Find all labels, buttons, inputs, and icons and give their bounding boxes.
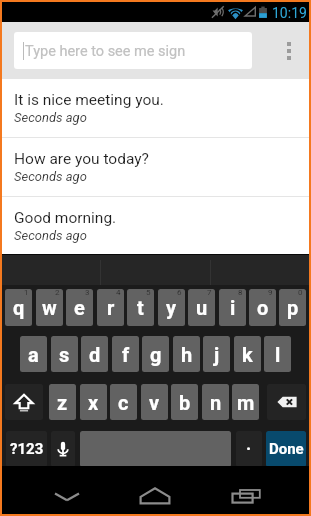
button[interactable]: r	[97, 289, 124, 326]
staticText: n	[210, 391, 222, 414]
button[interactable]: Voice input	[51, 431, 75, 467]
button[interactable]: Home	[113, 466, 197, 514]
button[interactable]: Hide keyboard	[25, 466, 109, 514]
button[interactable]: y	[158, 289, 185, 326]
staticText: e	[74, 296, 85, 319]
button[interactable]: x	[80, 384, 107, 420]
button[interactable]: Shift	[5, 384, 43, 420]
staticText: Good morning.	[14, 209, 117, 227]
staticText: 6	[177, 289, 182, 297]
staticText: z	[57, 391, 68, 414]
staticText: 5	[146, 289, 151, 297]
staticText: w	[42, 296, 57, 319]
staticText: 7	[207, 289, 212, 297]
staticText: Seconds ago	[14, 110, 87, 125]
staticText: i	[230, 296, 236, 319]
button[interactable]: Recent apps	[204, 466, 288, 514]
staticText: Seconds ago	[14, 169, 87, 184]
button[interactable]	[80, 431, 231, 467]
button[interactable]: o	[249, 289, 276, 326]
staticText: p	[287, 296, 299, 319]
button[interactable]: Good morning.	[2, 197, 309, 254]
staticText: Done	[269, 440, 304, 458]
staticText: 1	[24, 289, 29, 297]
staticText: l	[275, 343, 281, 366]
button[interactable]: n	[202, 384, 229, 420]
staticText: m	[237, 391, 255, 414]
staticText: ?123	[10, 440, 44, 458]
staticText: Type here to see me sign	[25, 43, 186, 60]
staticText: x	[88, 391, 99, 414]
staticText: 9	[268, 289, 273, 297]
button[interactable]: i	[219, 289, 246, 326]
button[interactable]: Done	[266, 431, 306, 467]
staticText: h	[181, 343, 193, 366]
staticText: How are you today?	[14, 150, 149, 168]
staticText: v	[149, 391, 160, 414]
button[interactable]: j	[203, 336, 230, 372]
button[interactable]: q	[5, 289, 32, 326]
staticText: g	[150, 343, 162, 366]
staticText: 8	[238, 289, 243, 297]
staticText: q	[13, 296, 25, 319]
button[interactable]: p	[279, 289, 306, 326]
staticText: a	[28, 343, 39, 366]
button[interactable]: a	[20, 336, 47, 372]
staticText: t	[137, 296, 144, 319]
button[interactable]: How are you today?	[2, 138, 309, 196]
button[interactable]: t	[127, 289, 154, 326]
staticText: b	[179, 391, 191, 414]
button[interactable]: v	[141, 384, 168, 420]
button[interactable]: c	[110, 384, 137, 420]
staticText: u	[196, 296, 208, 319]
button[interactable]: Type here to see me sign	[14, 32, 252, 69]
staticText: s	[59, 343, 70, 366]
button[interactable]: m	[232, 384, 259, 420]
button[interactable]: More options	[268, 22, 309, 79]
button[interactable]: ?123	[6, 431, 47, 467]
other: Silent mode	[210, 4, 226, 20]
staticText: d	[89, 343, 101, 366]
button[interactable]: u	[188, 289, 215, 326]
button[interactable]: g	[142, 336, 169, 372]
staticText: 10:19	[272, 5, 307, 21]
staticText: 0	[298, 289, 303, 297]
button[interactable]: d	[81, 336, 108, 372]
button[interactable]: Backspace	[267, 384, 306, 420]
button[interactable]: b	[171, 384, 198, 420]
staticText: f	[122, 343, 130, 366]
staticText: y	[166, 296, 177, 319]
staticText: o	[257, 296, 269, 319]
staticText: 2	[55, 289, 60, 297]
staticText: r	[107, 296, 115, 319]
staticText: It is nice meeting you.	[14, 91, 164, 109]
button[interactable]: ·	[236, 431, 262, 467]
button[interactable]: k	[234, 336, 261, 372]
staticText: c	[118, 391, 129, 414]
staticText: ·	[246, 439, 252, 459]
staticText: Seconds ago	[14, 228, 87, 243]
button[interactable]: It is nice meeting you.	[2, 79, 309, 137]
button[interactable]: e	[66, 289, 93, 326]
staticText: j	[214, 343, 220, 366]
staticText: 4	[116, 289, 121, 297]
staticText: k	[242, 343, 253, 366]
button[interactable]: z	[49, 384, 76, 420]
button[interactable]: w	[36, 289, 63, 326]
staticText: 3	[85, 289, 90, 297]
button[interactable]: s	[51, 336, 78, 372]
button[interactable]: h	[173, 336, 200, 372]
button[interactable]: l	[264, 336, 291, 372]
button[interactable]: f	[112, 336, 139, 372]
